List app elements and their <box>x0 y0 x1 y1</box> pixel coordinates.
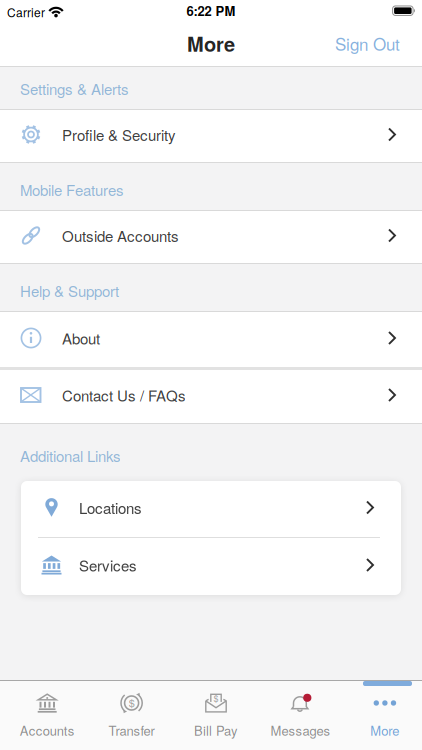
staticText: More <box>187 29 235 57</box>
staticText: Bill Pay <box>194 721 238 739</box>
staticText: Contact Us / FAQs <box>62 384 186 405</box>
staticText: Sign Out <box>335 32 400 55</box>
button[interactable]: Contact Us / FAQs <box>0 370 422 423</box>
staticText: Carrier <box>7 4 45 20</box>
staticText: Services <box>79 554 137 575</box>
staticText: Additional Links <box>20 445 121 466</box>
button[interactable]: Profile & Security <box>0 110 422 162</box>
staticText: Locations <box>79 497 142 518</box>
button[interactable]: Messages <box>253 681 338 750</box>
button[interactable]: Accounts <box>0 681 84 750</box>
staticText: Help & Support <box>20 280 119 301</box>
staticText: Outside Accounts <box>62 225 179 246</box>
staticText: Messages <box>270 721 330 739</box>
staticText: About <box>62 327 100 348</box>
button[interactable]: About <box>0 312 422 367</box>
staticText: Accounts <box>20 721 75 739</box>
staticText: Transfer <box>109 721 155 739</box>
button[interactable]: Sign Out <box>335 33 422 57</box>
button[interactable]: Outside Accounts <box>0 211 422 263</box>
staticText: $ <box>129 695 135 710</box>
button[interactable]: More <box>338 681 422 750</box>
button[interactable]: Services <box>21 538 401 595</box>
staticText: $ <box>213 692 218 704</box>
button[interactable]: $ <box>169 681 253 750</box>
staticText: More <box>370 721 399 739</box>
staticText: Settings & Alerts <box>20 78 129 99</box>
button[interactable]: Locations <box>21 481 401 537</box>
button[interactable]: $ <box>84 681 169 750</box>
staticText: 6:22 PM <box>186 2 235 20</box>
staticText: Profile & Security <box>62 124 176 145</box>
staticText: Mobile Features <box>20 179 124 200</box>
